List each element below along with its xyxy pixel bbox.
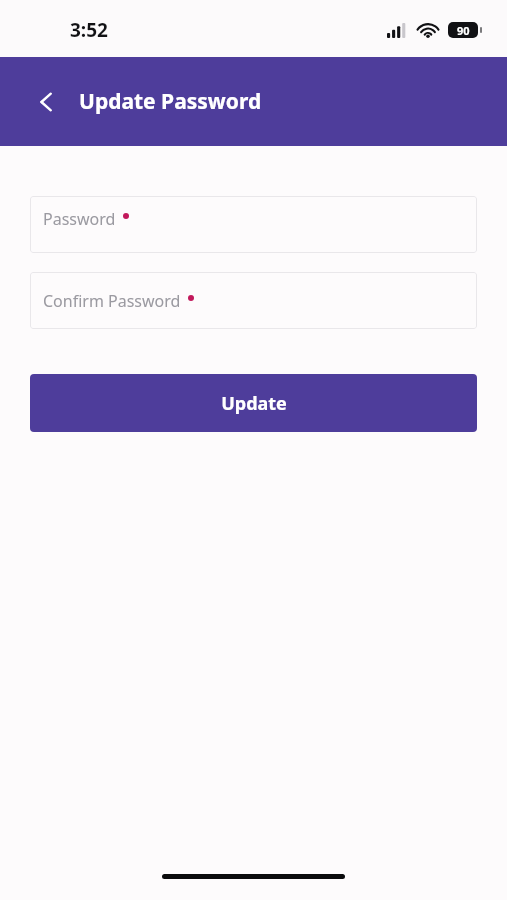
button[interactable]: Update: [30, 374, 477, 432]
button[interactable]: Confirm Password: [30, 272, 477, 329]
staticText: Confirm Password: [43, 290, 181, 312]
staticText: Update Password: [79, 87, 262, 116]
button[interactable]: Password: [30, 196, 477, 253]
staticText: 90: [457, 23, 470, 38]
staticText: Update: [221, 391, 287, 416]
button[interactable]: Back: [26, 82, 66, 122]
staticText: 3:52: [70, 17, 108, 43]
staticText: Password: [43, 208, 116, 230]
